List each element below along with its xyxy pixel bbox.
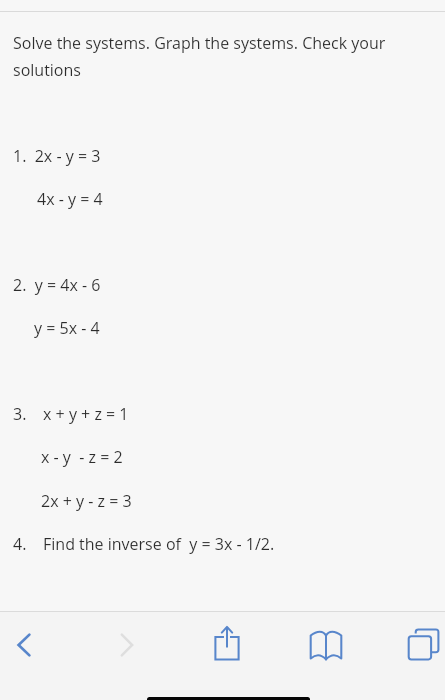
button[interactable]: Tabs — [401, 623, 445, 667]
button[interactable]: Back — [2, 623, 46, 667]
staticText: x - y - z = 2 — [41, 446, 123, 468]
staticText: 4. Find the inverse of y = 3x - 1/2. — [13, 533, 275, 555]
staticText: 3. x + y + z = 1 — [13, 403, 129, 425]
staticText: Solve the systems. Graph the systems. Ch… — [13, 32, 386, 54]
staticText: 2. y = 4x - 6 — [13, 274, 101, 296]
staticText: 4x - y = 4 — [37, 188, 103, 210]
staticText: 1. 2x - y = 3 — [13, 145, 101, 167]
button[interactable]: Share — [205, 623, 249, 667]
button[interactable]: Forward — [105, 623, 149, 667]
staticText: solutions — [13, 59, 81, 81]
staticText: y = 5x - 4 — [34, 317, 100, 339]
staticText: 2x + y - z = 3 — [41, 490, 132, 512]
button[interactable]: Bookmarks — [304, 623, 348, 667]
